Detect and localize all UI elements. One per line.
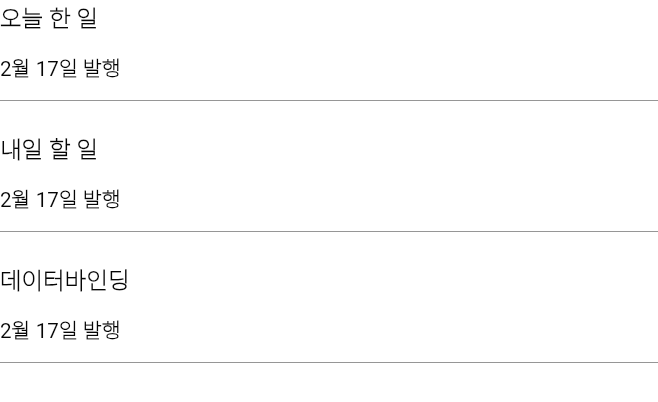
- staticText: 데이터바인딩: [0, 262, 130, 296]
- staticText: 오늘 한 일: [0, 0, 99, 34]
- button[interactable]: 내일 할 일: [0, 101, 658, 232]
- staticText: 2월 17일 발행: [0, 183, 121, 213]
- button[interactable]: 오늘 한 일: [0, 0, 658, 101]
- staticText: 2월 17일 발행: [0, 52, 121, 82]
- button[interactable]: 데이터바인딩: [0, 232, 658, 363]
- staticText: 내일 할 일: [0, 131, 99, 165]
- staticText: 2월 17일 발행: [0, 314, 121, 344]
